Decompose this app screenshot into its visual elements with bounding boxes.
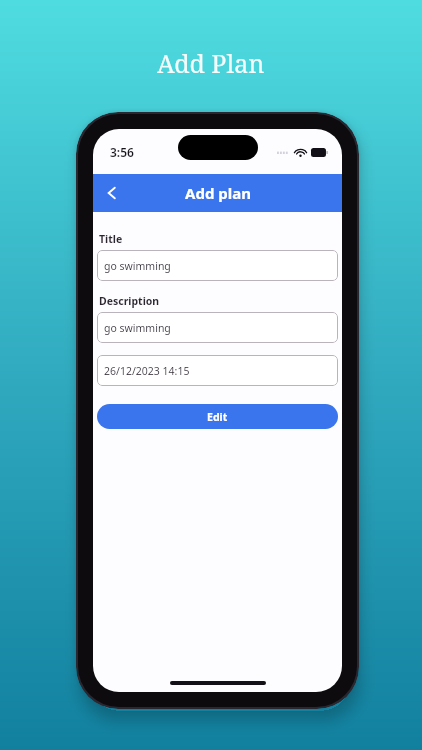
staticText: Title: [99, 232, 123, 246]
staticText: 26/12/2023 14:15: [104, 364, 190, 378]
staticText: Add Plan: [157, 46, 265, 80]
staticText: go swimming: [104, 259, 171, 273]
staticText: Edit: [207, 410, 228, 424]
staticText: go swimming: [104, 321, 171, 335]
button[interactable]: Edit: [97, 404, 338, 429]
staticText: Description: [99, 294, 160, 308]
button[interactable]: 26/12/2023 14:15: [97, 355, 338, 386]
button[interactable]: Back: [93, 174, 131, 212]
staticText: Add plan: [185, 183, 251, 203]
staticText: 3:56: [110, 144, 134, 160]
